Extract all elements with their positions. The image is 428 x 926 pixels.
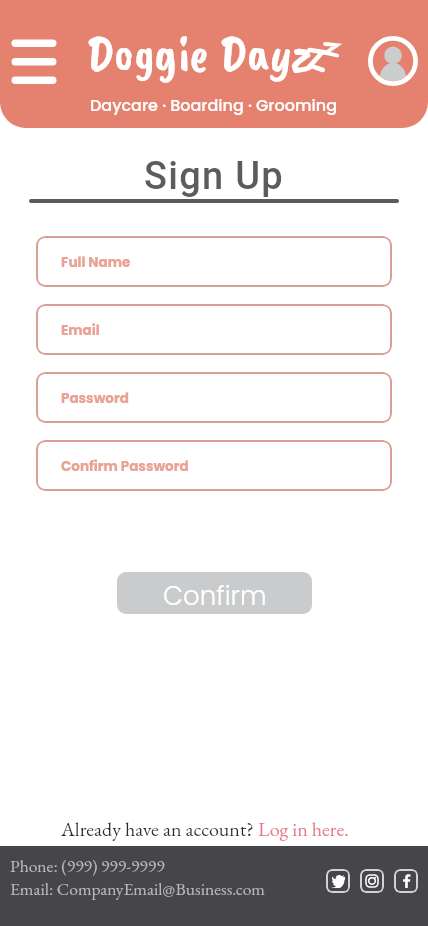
staticText: Password — [61, 389, 129, 408]
staticText: Email — [61, 321, 100, 340]
button[interactable]: Email — [36, 304, 392, 355]
button[interactable]: Full Name — [36, 236, 392, 287]
staticText: Daycare · Boarding · Grooming — [90, 94, 338, 116]
staticText: Already have an account? — [61, 816, 258, 842]
button[interactable]: Facebook — [394, 869, 418, 893]
staticText: Doggie Dayz — [86, 20, 313, 86]
staticText: Confirm — [163, 578, 267, 614]
button[interactable]: Confirm — [117, 572, 312, 614]
button[interactable]: Password — [36, 372, 392, 423]
button[interactable]: Open navigation menu — [11, 36, 57, 86]
staticText: Sign Up — [0, 154, 428, 199]
button[interactable]: Instagram — [360, 869, 384, 893]
staticText: Email: CompanyEmail@Business.com — [10, 877, 265, 900]
button[interactable]: Account profile — [368, 36, 418, 86]
button[interactable]: Confirm Password — [36, 440, 392, 491]
staticText: Phone: (999) 999-9999 — [10, 854, 165, 877]
staticText: Confirm Password — [61, 457, 189, 476]
staticText: Full Name — [61, 253, 131, 272]
button[interactable]: Log in here. — [258, 816, 349, 842]
button[interactable]: Twitter — [326, 869, 350, 893]
